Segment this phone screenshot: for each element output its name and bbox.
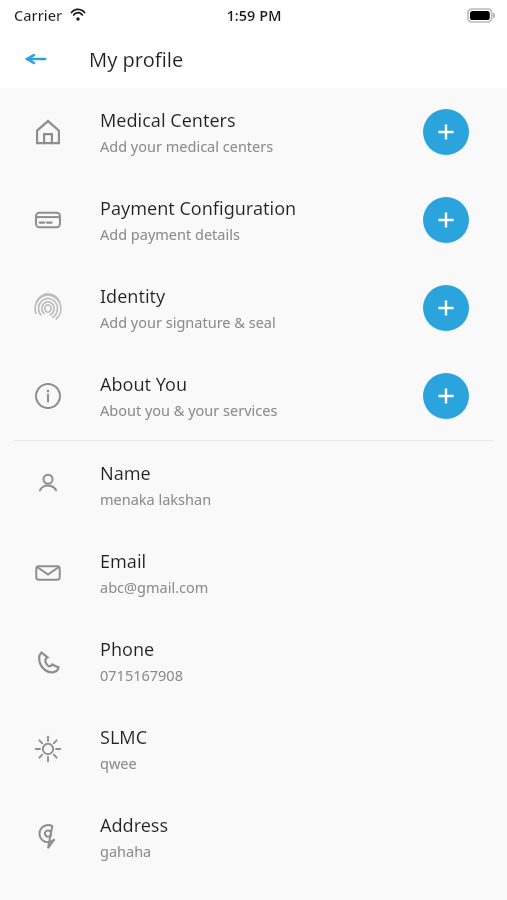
staticText: About you & your services — [100, 400, 278, 420]
button[interactable]: Phone — [0, 617, 507, 705]
staticText: Address — [100, 813, 169, 838]
button[interactable]: Add Identity — [423, 285, 469, 331]
staticText: gahaha — [100, 841, 152, 861]
staticText: Name — [100, 461, 151, 486]
staticText: Payment Configuration — [100, 196, 297, 221]
button[interactable]: Add About You — [423, 373, 469, 419]
staticText: My profile — [89, 46, 184, 73]
staticText: About You — [100, 372, 188, 397]
button[interactable]: Add Payment Configuration — [423, 197, 469, 243]
staticText: Carrier — [14, 5, 63, 25]
staticText: Medical Centers — [100, 108, 236, 133]
button[interactable]: Payment Configuration — [0, 176, 507, 264]
button[interactable]: Add Medical Centers — [423, 109, 469, 155]
staticText: qwee — [100, 753, 137, 773]
button[interactable]: Email — [0, 529, 507, 617]
button[interactable]: Name — [0, 441, 507, 529]
button[interactable]: About You — [0, 352, 507, 440]
button[interactable]: Address — [0, 793, 507, 881]
button[interactable]: Identity — [0, 264, 507, 352]
staticText: Identity — [100, 284, 166, 309]
staticText: menaka lakshan — [100, 489, 212, 509]
button[interactable]: SLMC — [0, 705, 507, 793]
staticText: 0715167908 — [100, 665, 183, 685]
staticText: Email — [100, 549, 147, 574]
staticText: Add payment details — [100, 224, 240, 244]
staticText: 1:59 PM — [226, 5, 282, 25]
button[interactable]: Medical Centers — [0, 88, 507, 176]
button[interactable]: Back — [18, 41, 54, 77]
staticText: Phone — [100, 637, 155, 662]
staticText: Add your signature & seal — [100, 312, 276, 332]
staticText: Add your medical centers — [100, 136, 274, 156]
staticText: SLMC — [100, 725, 148, 750]
staticText: abc@gmail.com — [100, 577, 209, 597]
